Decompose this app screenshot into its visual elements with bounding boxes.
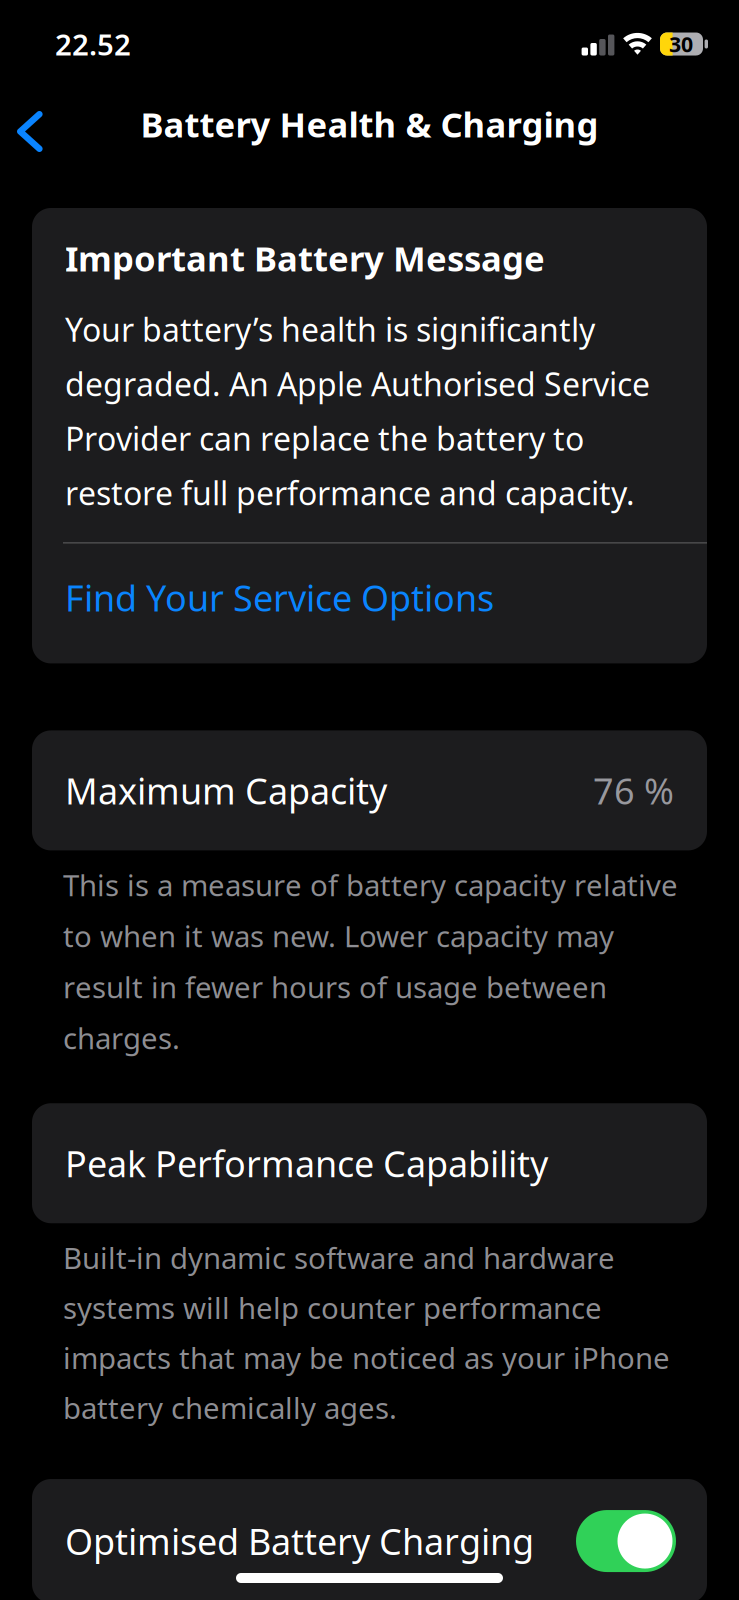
staticText: Important Battery Message (65, 235, 545, 281)
staticText: Your battery’s health is significantly d… (65, 308, 650, 514)
staticText: 30 (669, 30, 693, 58)
staticText: This is a measure of battery capacity re… (63, 865, 678, 1057)
staticText: Peak Performance Capability (65, 1139, 548, 1187)
staticText: Battery Health & Charging (140, 101, 598, 147)
button[interactable]: Peak Performance Capability (32, 1103, 707, 1223)
staticText: Maximum Capacity (65, 766, 387, 814)
button[interactable]: Back (0, 88, 67, 157)
staticText: Find Your Service Options (65, 574, 494, 621)
button[interactable]: Maximum Capacity (32, 730, 707, 850)
staticText: Optimised Battery Charging (65, 1517, 534, 1565)
staticText: 22.52 (55, 24, 131, 63)
staticText: Built-in dynamic software and hardware s… (63, 1238, 670, 1427)
button[interactable]: Find Your Service Options (32, 544, 707, 663)
staticText: 76 % (593, 766, 674, 814)
button[interactable]: Optimised Battery Charging (576, 1510, 676, 1572)
